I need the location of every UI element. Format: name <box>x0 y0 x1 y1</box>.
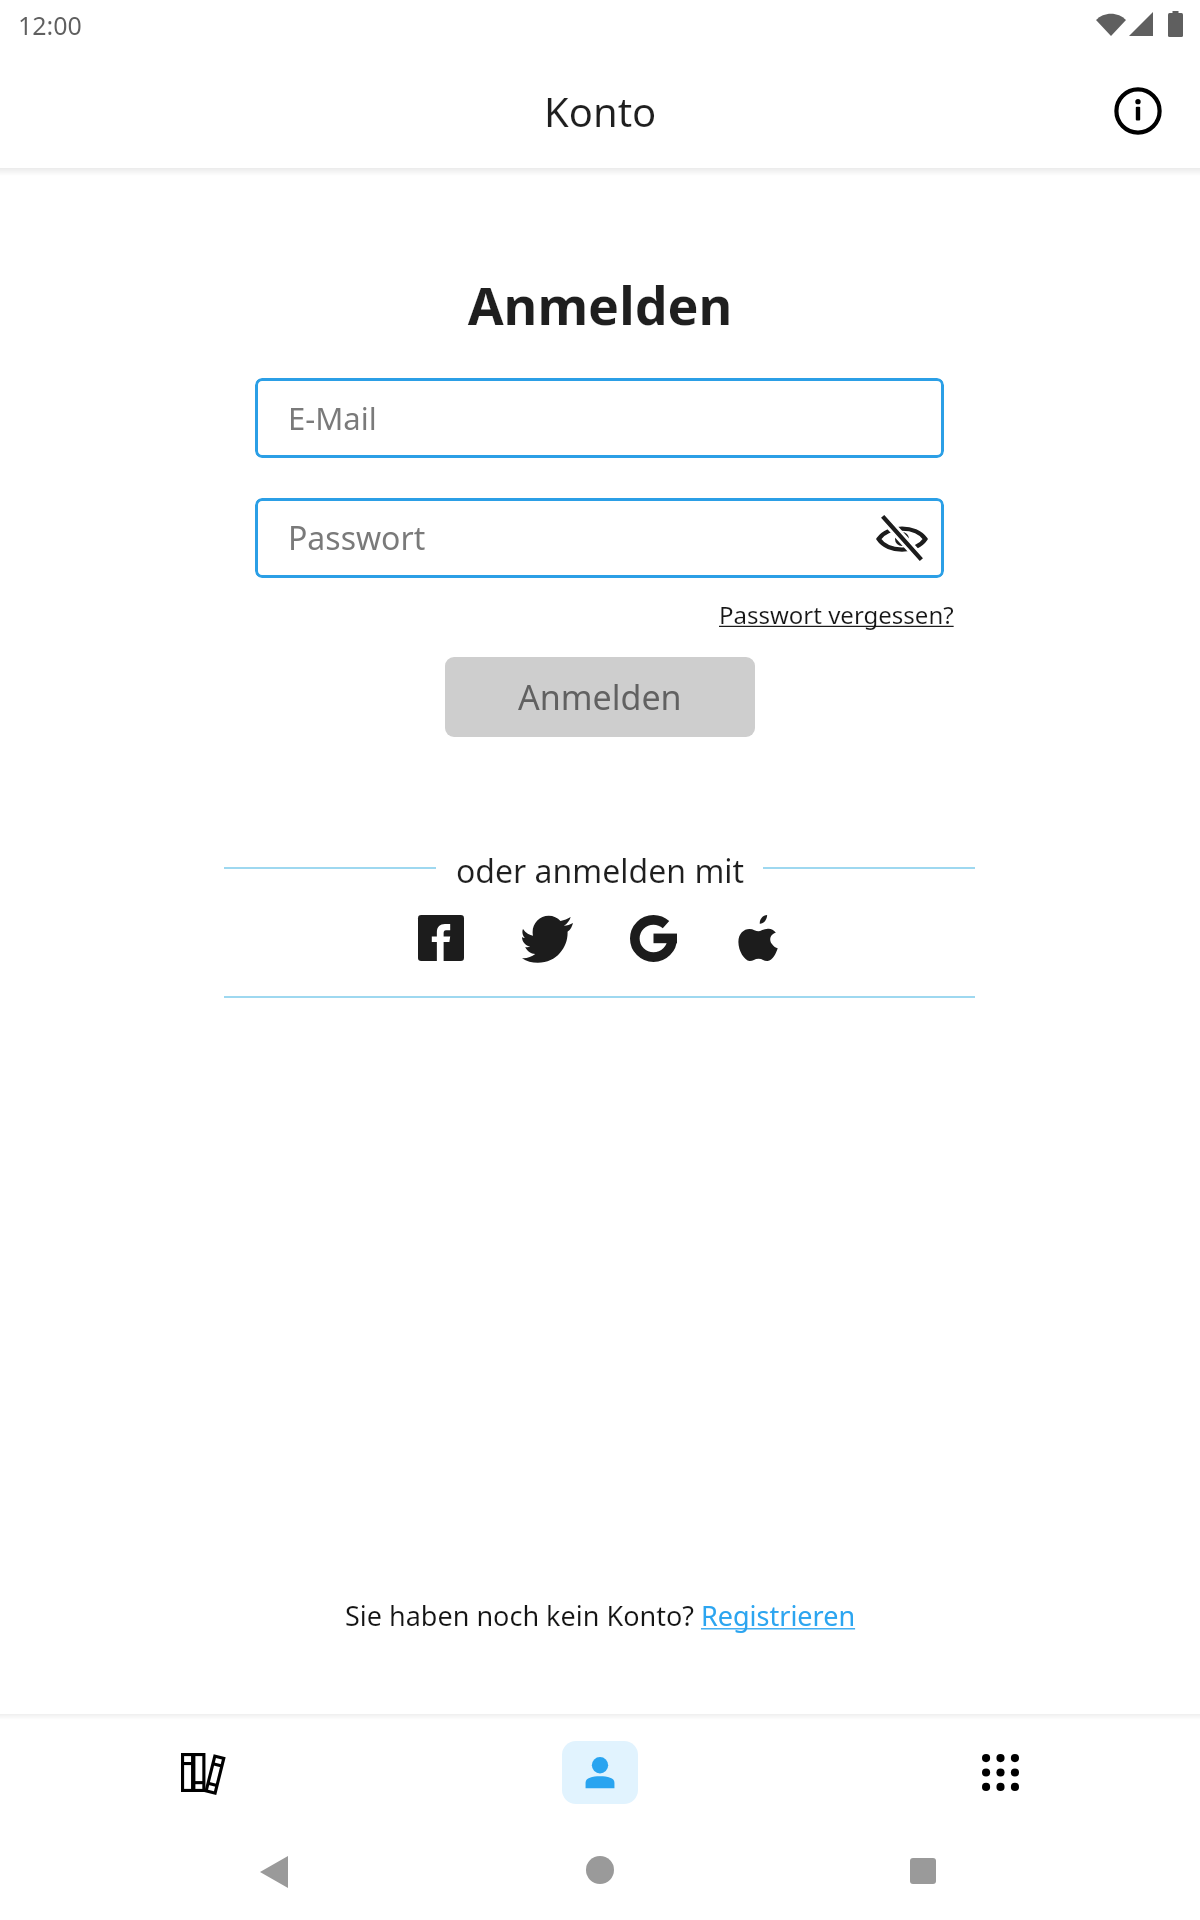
button[interactable]: Passwort vergessen? <box>719 598 954 631</box>
button[interactable]: Sie haben noch kein Konto? Registrieren <box>345 1597 856 1634</box>
button[interactable]: Mit Twitter anmelden <box>511 902 583 974</box>
button[interactable]: Anmelden <box>445 657 755 737</box>
button[interactable]: Bibliothek <box>135 1730 267 1814</box>
staticText: E-Mail <box>288 397 377 439</box>
staticText: Passwort vergessen? <box>719 598 954 631</box>
staticText: Passwort <box>288 516 426 560</box>
button[interactable]: Mit Facebook anmelden <box>405 902 477 974</box>
staticText: Sie haben noch kein Konto? Registrieren <box>345 1597 856 1634</box>
button[interactable]: Passwort <box>255 498 944 578</box>
button[interactable]: Konto <box>534 1730 666 1814</box>
button[interactable]: E-Mail <box>255 378 944 458</box>
button[interactable]: Passwort anzeigen <box>870 506 934 570</box>
button[interactable]: Mit Apple anmelden <box>724 902 796 974</box>
button[interactable]: Apps <box>934 1730 1066 1814</box>
button[interactable]: Info <box>1098 71 1178 151</box>
staticText: 12:00 <box>18 8 82 42</box>
button[interactable]: Mit Google anmelden <box>617 902 689 974</box>
staticText: oder anmelden mit <box>456 849 745 893</box>
staticText: Anmelden <box>0 269 1200 340</box>
staticText: Anmelden <box>518 674 682 720</box>
staticText: Konto <box>544 84 657 138</box>
